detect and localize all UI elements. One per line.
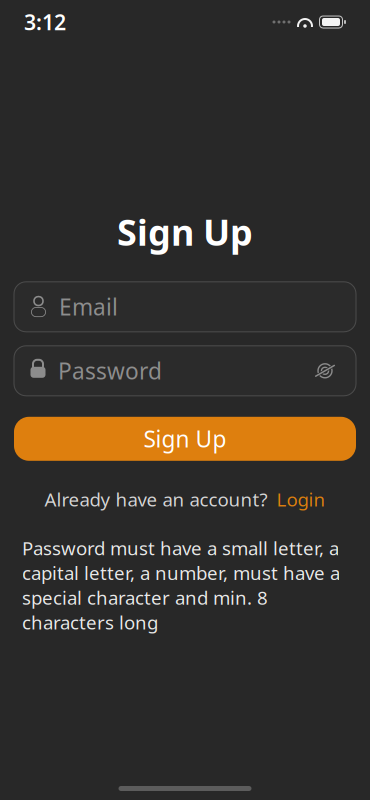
staticText: Sign Up [143, 424, 226, 454]
staticText: 3:12 [24, 8, 66, 36]
button[interactable]: Sign Up [14, 417, 356, 461]
button[interactable]: Show password [310, 356, 340, 386]
staticText: Password [58, 356, 162, 386]
staticText: Already have an account? [44, 487, 267, 512]
staticText: Login [276, 487, 325, 512]
staticText: Sign Up [117, 208, 253, 256]
staticText: Email [59, 292, 118, 322]
staticText: Password must have a small letter, a cap… [22, 536, 340, 635]
button[interactable]: Login [276, 487, 325, 512]
